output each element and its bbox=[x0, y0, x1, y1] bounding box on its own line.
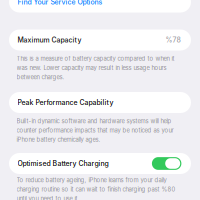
button[interactable]: Optimised Battery Charging bbox=[9, 153, 191, 174]
staticText: Optimised Battery Charging bbox=[18, 159, 109, 168]
staticText: Maximum Capacity bbox=[18, 36, 82, 44]
button[interactable]: Find Your Service Options bbox=[18, 0, 182, 6]
staticText: Peak Performance Capability bbox=[18, 98, 114, 107]
staticText: To reduce battery ageing, iPhone learns … bbox=[16, 176, 175, 200]
button[interactable]: Maximum Capacity bbox=[9, 29, 191, 50]
staticText: Built-in dynamic software and hardware s… bbox=[16, 117, 173, 143]
button[interactable]: Peak Performance Capability bbox=[9, 92, 191, 113]
staticText: This is a measure of battery capacity co… bbox=[16, 55, 174, 81]
staticText: %78 bbox=[165, 36, 180, 44]
staticText: Find Your Service Options bbox=[18, 0, 103, 6]
